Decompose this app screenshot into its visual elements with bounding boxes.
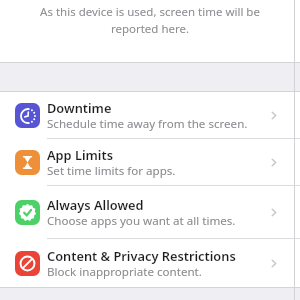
other: Open [267, 109, 280, 122]
other: Open [267, 206, 280, 219]
staticText: Set time limits for apps. [47, 163, 176, 179]
staticText: App Limits [47, 146, 113, 163]
button[interactable]: App Limits [0, 139, 300, 185]
staticText: Block inappropriate content. [47, 264, 202, 280]
staticText: Choose apps you want at all times. [47, 213, 236, 229]
staticText: Downtime [47, 99, 112, 116]
button[interactable]: Always Allowed [0, 186, 300, 238]
button[interactable]: Content & Privacy Restrictions [0, 239, 300, 287]
staticText: Content & Privacy Restrictions [47, 247, 236, 264]
staticText: Always Allowed [47, 196, 144, 213]
staticText: Schedule time away from the screen. [47, 116, 248, 132]
staticText: As this device is used, screen time will… [28, 4, 272, 36]
button[interactable]: Downtime [0, 92, 300, 138]
other: Open [267, 156, 280, 169]
other: Open [267, 257, 280, 270]
